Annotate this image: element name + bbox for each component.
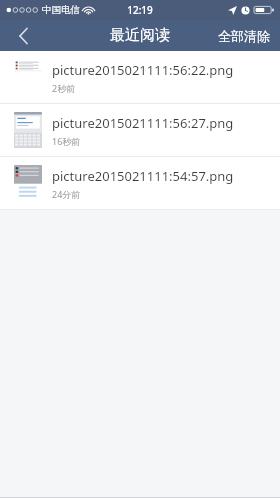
other: Location [228, 6, 237, 15]
staticText: 最近阅读 [110, 26, 170, 45]
staticText: 12:19 [127, 3, 153, 17]
button[interactable]: Back [0, 20, 46, 51]
staticText: 16秒前 [52, 135, 81, 147]
staticText: picture2015021111:56:27.png [52, 114, 234, 132]
staticText: picture2015021111:56:22.png [52, 61, 234, 79]
staticText: 24分前 [52, 188, 81, 200]
button[interactable]: 全部清除 [208, 20, 280, 51]
staticText: 2秒前 [52, 82, 76, 94]
staticText: picture2015021111:54:57.png [52, 167, 234, 185]
staticText: 全部清除 [218, 28, 270, 44]
button[interactable]: picture2015021111:56:22.png [0, 51, 280, 103]
button[interactable]: picture2015021111:54:57.png [0, 157, 280, 209]
button[interactable]: picture2015021111:56:27.png [0, 104, 280, 156]
staticText: 中国电信 [42, 4, 80, 16]
